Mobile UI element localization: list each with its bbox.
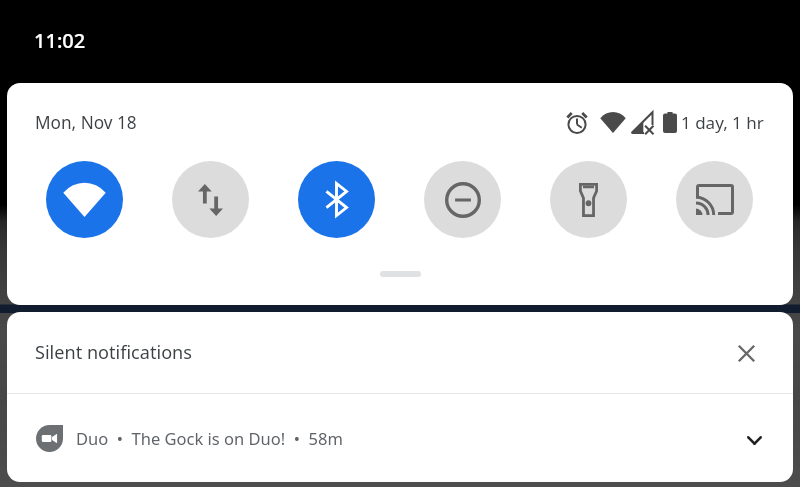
button[interactable]: Wi-Fi [46,161,123,238]
button[interactable]: Expand quick settings [380,271,421,277]
staticText: 11:02 [34,27,86,54]
button[interactable]: Do not disturb [424,161,501,238]
staticText: Silent notifications [35,340,192,365]
staticText: Mon, Nov 18 [35,111,137,134]
button[interactable]: Mobile data [172,161,249,238]
staticText: Duo • The Gock is on Duo! • 58m [76,427,343,449]
button[interactable]: Screen cast [676,161,753,238]
button[interactable]: Bluetooth [298,161,375,238]
button[interactable]: Expand notification [733,419,775,461]
button[interactable]: Flashlight [550,161,627,238]
staticText: 1 day, 1 hr [681,111,764,134]
button[interactable]: Duo • The Gock is on Duo! • 58m [7,394,793,482]
button[interactable]: Clear silent notifications [725,332,767,374]
